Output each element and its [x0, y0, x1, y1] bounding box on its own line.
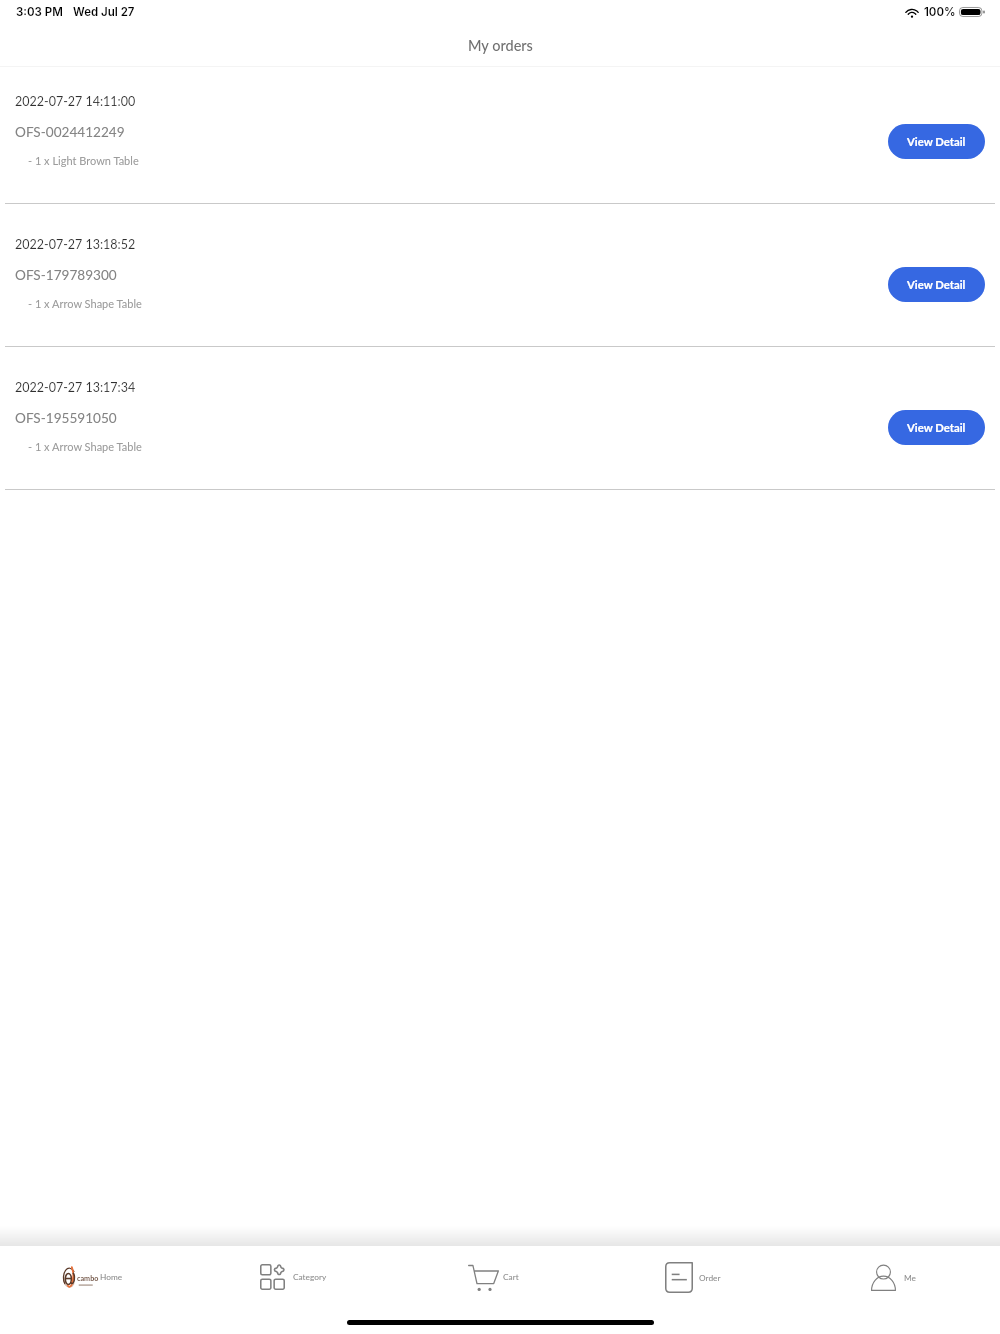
button[interactable]: View Detail [888, 410, 985, 445]
button[interactable]: Order [600, 1246, 800, 1308]
button[interactable]: Category [200, 1246, 400, 1308]
staticText: - 1 x Arrow Shape Table [28, 297, 142, 310]
staticText: View Detail [907, 278, 966, 292]
button[interactable]: Home [0, 1246, 200, 1308]
staticText: 100% [924, 5, 956, 19]
staticText: 2022-07-27 14:11:00 [15, 94, 136, 109]
staticText: cambo [77, 1274, 99, 1283]
staticText: 3:03 PM [16, 5, 63, 19]
button[interactable]: 2022-07-27 14:11:00 [0, 67, 1000, 203]
button[interactable]: Me [800, 1246, 1000, 1308]
staticText: 2022-07-27 13:18:52 [15, 237, 136, 252]
staticText: Home [100, 1272, 123, 1282]
staticText: - 1 x Arrow Shape Table [28, 440, 142, 453]
staticText: OFS-179789300 [15, 267, 117, 283]
staticText: View Detail [907, 135, 966, 149]
staticText: OFS-0024412249 [15, 124, 125, 140]
button[interactable]: 2022-07-27 13:17:34 [0, 347, 1000, 489]
button[interactable]: 2022-07-27 13:18:52 [0, 204, 1000, 346]
staticText: Category [293, 1272, 327, 1282]
staticText: 2022-07-27 13:17:34 [15, 380, 136, 395]
staticText: Cart [503, 1272, 519, 1282]
staticText: Order [699, 1273, 721, 1283]
staticText: My orders [468, 37, 533, 54]
staticText: Me [904, 1273, 916, 1283]
button[interactable]: View Detail [888, 124, 985, 159]
staticText: - 1 x Light Brown Table [28, 154, 139, 167]
button[interactable]: Cart [400, 1246, 600, 1308]
staticText: Wed Jul 27 [73, 5, 135, 19]
staticText: OFS-195591050 [15, 410, 117, 426]
staticText: View Detail [907, 421, 966, 435]
button[interactable]: View Detail [888, 267, 985, 302]
